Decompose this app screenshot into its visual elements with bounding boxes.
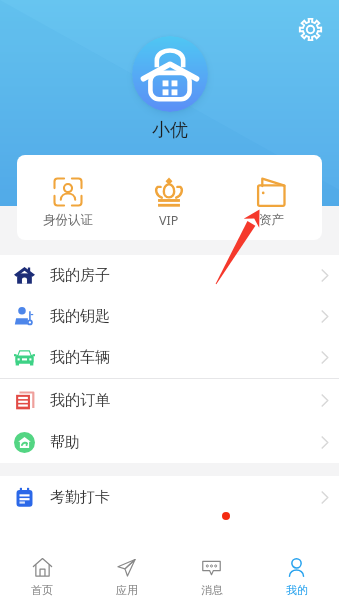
button[interactable]: 我的车辆	[0, 337, 339, 378]
staticText: 首页	[31, 583, 53, 597]
button[interactable]: 我的	[254, 554, 339, 601]
button[interactable]: 应用	[84, 554, 169, 601]
button[interactable]: 帮助	[0, 421, 339, 463]
staticText: VIP	[159, 212, 179, 229]
staticText: 考勤打卡	[50, 488, 110, 507]
staticText: 资产	[259, 212, 284, 228]
button[interactable]: 身份认证	[17, 155, 118, 240]
staticText: 帮助	[50, 433, 80, 452]
staticText: 我的订单	[50, 391, 110, 410]
button[interactable]: 我的订单	[0, 379, 339, 421]
staticText: 我的	[286, 583, 308, 597]
staticText: 消息	[201, 583, 223, 597]
button[interactable]: 我的房子	[0, 255, 339, 296]
button[interactable]: Settings	[297, 16, 324, 43]
staticText: 我的钥匙	[50, 307, 110, 326]
button[interactable]: 消息	[169, 554, 254, 601]
button[interactable]: 资产	[220, 155, 322, 240]
button[interactable]: 首页	[0, 554, 84, 601]
staticText: 我的房子	[50, 266, 110, 285]
staticText: 身份认证	[43, 212, 93, 228]
button[interactable]: VIP	[118, 155, 220, 240]
staticText: 我的车辆	[50, 348, 110, 367]
button[interactable]: 考勤打卡	[0, 476, 339, 518]
button[interactable]: 我的钥匙	[0, 296, 339, 337]
staticText: 应用	[116, 583, 138, 597]
staticText: 小优	[152, 119, 188, 142]
